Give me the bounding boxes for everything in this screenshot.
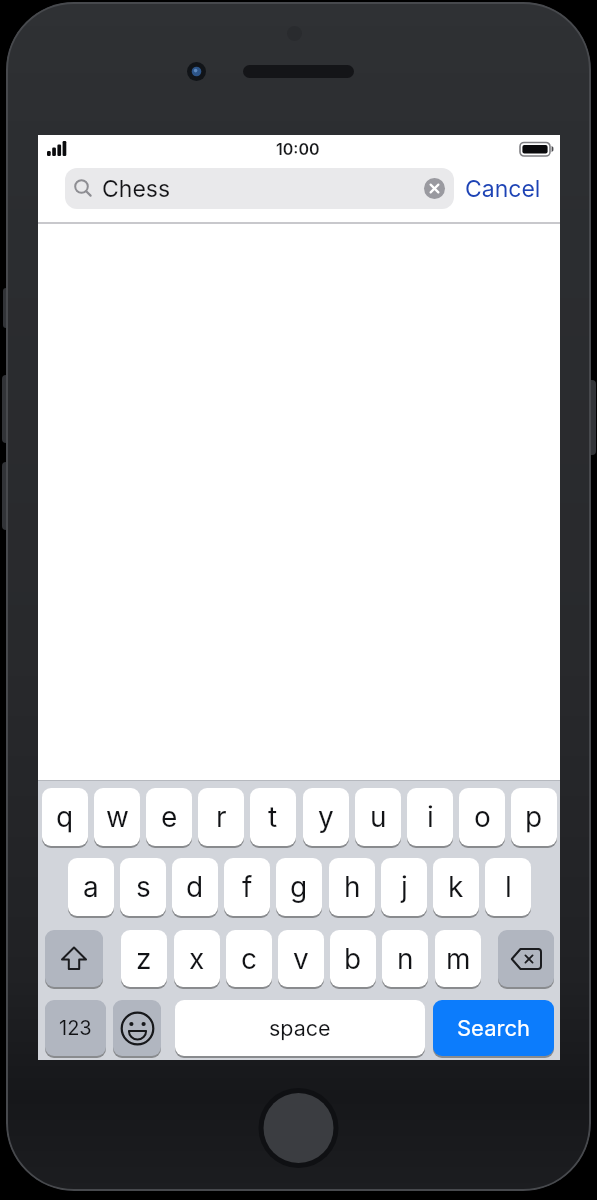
staticText: c [241, 942, 257, 976]
button[interactable]: o [459, 788, 505, 846]
button[interactable] [45, 930, 103, 987]
button[interactable]: i [407, 788, 453, 846]
button[interactable]: a [68, 858, 114, 916]
staticText: b [344, 942, 362, 976]
staticText: s [136, 870, 151, 904]
button[interactable]: f [224, 858, 270, 916]
button[interactable]: k [433, 858, 479, 916]
staticText: Cancel [465, 175, 541, 203]
staticText: Chess [102, 175, 171, 203]
button[interactable]: b [330, 930, 376, 987]
staticText: l [505, 870, 512, 904]
staticText: j [401, 870, 408, 904]
button[interactable] [498, 930, 554, 987]
staticText: u [370, 800, 387, 834]
staticText: r [216, 800, 227, 834]
button[interactable]: l [485, 858, 531, 916]
staticText: i [427, 800, 434, 834]
button[interactable]: e [146, 788, 192, 846]
button[interactable]: p [511, 788, 557, 846]
staticText: g [290, 870, 308, 904]
staticText: 10:00 [276, 139, 320, 158]
button[interactable]: h [329, 858, 375, 916]
staticText: n [397, 942, 414, 976]
staticText: h [344, 870, 361, 904]
button[interactable]: x [174, 930, 220, 987]
button[interactable]: Search [433, 1000, 554, 1056]
button[interactable]: n [382, 930, 428, 987]
staticText: f [242, 870, 253, 904]
button[interactable]: m [435, 930, 481, 987]
button[interactable]: 123 [45, 1000, 106, 1056]
staticText: 123 [59, 1016, 92, 1040]
staticText: q [56, 800, 74, 834]
button[interactable]: r [198, 788, 244, 846]
staticText: t [268, 800, 278, 834]
staticText: v [293, 942, 309, 976]
staticText: p [525, 800, 543, 834]
button[interactable] [113, 1000, 161, 1056]
button[interactable]: u [355, 788, 401, 846]
button[interactable]: Chess [65, 168, 454, 209]
button[interactable]: g [276, 858, 322, 916]
staticText: space [269, 1015, 331, 1041]
staticText: d [186, 870, 204, 904]
button[interactable]: Cancel [459, 168, 546, 209]
staticText: m [446, 942, 471, 976]
button[interactable]: v [278, 930, 324, 987]
button[interactable]: y [303, 788, 349, 846]
button[interactable]: space [175, 1000, 425, 1056]
button[interactable]: t [250, 788, 296, 846]
button[interactable]: s [120, 858, 166, 916]
staticText: o [474, 800, 491, 834]
staticText: w [106, 800, 129, 834]
button[interactable]: c [226, 930, 272, 987]
staticText: a [83, 870, 99, 904]
staticText: k [448, 870, 464, 904]
button[interactable]: j [381, 858, 427, 916]
staticText: e [161, 800, 178, 834]
button[interactable] [424, 178, 445, 199]
button[interactable]: d [172, 858, 218, 916]
staticText: y [318, 800, 334, 834]
staticText: z [136, 942, 152, 976]
staticText: Search [457, 1015, 531, 1042]
button[interactable]: q [42, 788, 88, 846]
staticText: x [189, 942, 205, 976]
button[interactable]: z [121, 930, 167, 987]
button[interactable]: w [94, 788, 140, 846]
